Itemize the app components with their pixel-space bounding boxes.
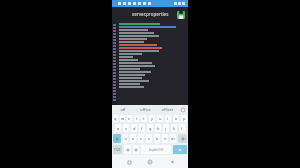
button[interactable]: Emoji	[124, 145, 131, 154]
button[interactable]: s	[123, 124, 129, 132]
staticText: q	[114, 116, 117, 121]
button[interactable]: Home	[145, 157, 155, 167]
staticText: y	[151, 116, 154, 121]
button[interactable]: w	[120, 115, 125, 122]
button[interactable]: More suggestions	[178, 105, 188, 114]
staticText: f	[141, 126, 143, 131]
staticText: server.properties	[132, 11, 169, 17]
button[interactable]: Shift	[113, 134, 121, 143]
staticText: z	[125, 136, 127, 141]
button[interactable]: o	[173, 115, 179, 122]
button[interactable]: j	[163, 124, 169, 132]
staticText: k	[173, 126, 176, 131]
staticText: l	[181, 126, 183, 131]
staticText: e	[128, 116, 131, 121]
staticText: b	[156, 136, 159, 141]
button[interactable]: c	[138, 134, 144, 143]
button[interactable]: Comma	[133, 145, 139, 154]
staticText: English (US)	[149, 148, 164, 152]
button[interactable]: English (US)	[141, 145, 171, 154]
button[interactable]: b	[154, 134, 160, 143]
staticText: r	[136, 116, 138, 121]
staticText: s	[125, 126, 127, 131]
staticText: w	[121, 116, 125, 121]
button[interactable]: x	[130, 134, 136, 143]
staticText: ?123	[114, 148, 121, 152]
button[interactable]: g	[147, 124, 153, 132]
button[interactable]: office	[134, 105, 156, 114]
button[interactable]: u	[157, 115, 163, 122]
button[interactable]: Enter	[173, 145, 187, 154]
button[interactable]: k	[171, 124, 177, 132]
staticText: c	[140, 136, 142, 141]
staticText: d	[133, 126, 136, 131]
button[interactable]: i	[165, 115, 171, 122]
staticText: i	[167, 116, 169, 121]
button[interactable]: h	[155, 124, 161, 132]
staticText: h	[157, 126, 160, 131]
staticText: x	[132, 136, 135, 141]
staticText: a	[117, 126, 120, 131]
button[interactable]: Recents	[124, 157, 134, 167]
button[interactable]: t	[141, 115, 147, 122]
button[interactable]: off	[112, 105, 134, 114]
staticText: off	[120, 107, 126, 112]
staticText: v	[148, 136, 151, 141]
staticText: o	[175, 116, 178, 121]
button[interactable]: f	[139, 124, 145, 132]
staticText: office	[140, 107, 151, 112]
staticText: g	[149, 126, 152, 131]
button[interactable]: Save	[176, 10, 185, 19]
staticText: n	[164, 136, 167, 141]
button[interactable]: Backspace	[178, 134, 187, 143]
button[interactable]: officer	[156, 105, 178, 114]
button[interactable]: p	[181, 115, 187, 122]
staticText: t	[143, 116, 145, 121]
button[interactable]: ?123	[113, 145, 122, 154]
button[interactable]: v	[146, 134, 152, 143]
button[interactable]: e	[127, 115, 132, 122]
staticText: u	[159, 116, 162, 121]
button[interactable]: n	[162, 134, 168, 143]
button[interactable]: r	[134, 115, 139, 122]
button[interactable]: q	[113, 115, 118, 122]
staticText: m	[171, 136, 175, 141]
button[interactable]: d	[131, 124, 137, 132]
staticText: officer	[161, 107, 174, 112]
button[interactable]: Back	[167, 157, 177, 167]
staticText: p	[183, 116, 186, 121]
button[interactable]: y	[149, 115, 155, 122]
button[interactable]: m	[170, 134, 176, 143]
staticText: j	[165, 126, 167, 131]
button[interactable]: a	[115, 124, 121, 132]
button[interactable]: z	[123, 134, 128, 143]
button[interactable]: l	[179, 124, 185, 132]
